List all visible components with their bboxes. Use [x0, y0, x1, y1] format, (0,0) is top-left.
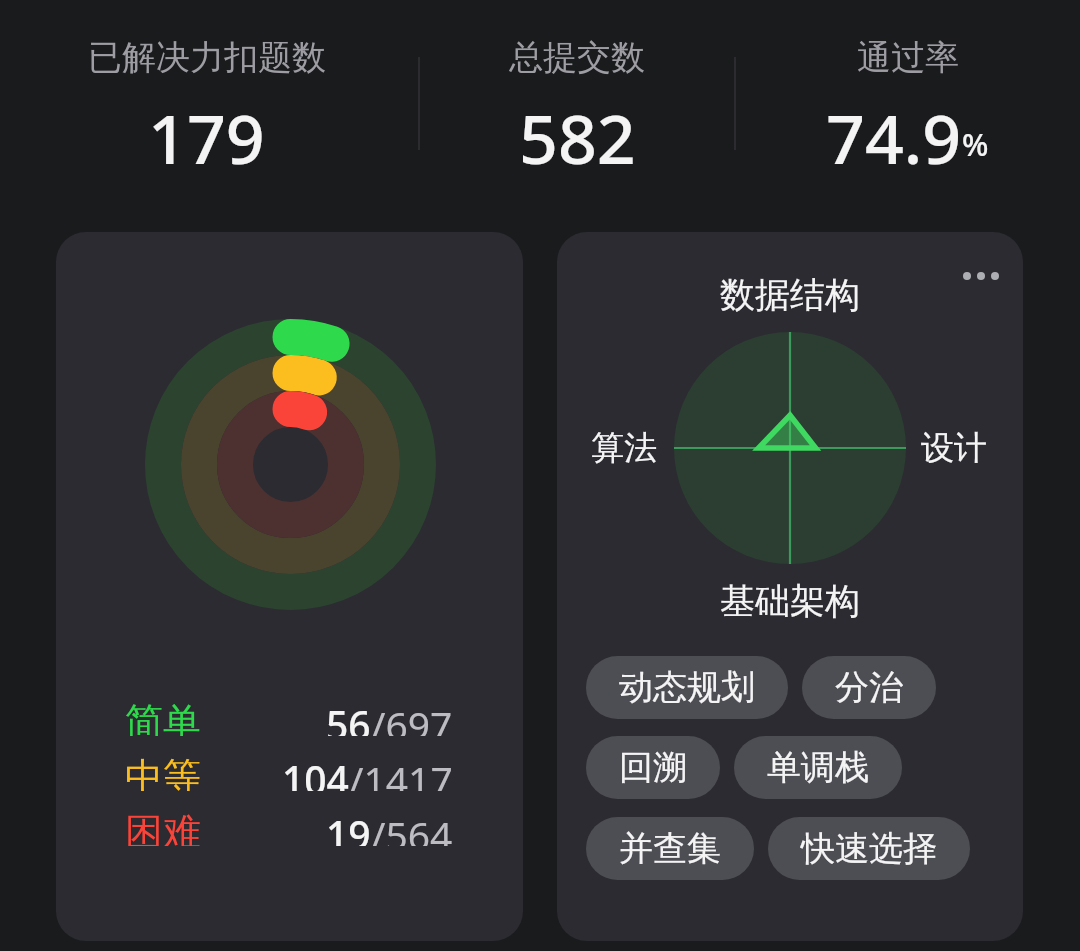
staticText: /564 [371, 808, 453, 846]
staticText: 中等 [125, 753, 201, 791]
button[interactable]: 简单 [56, 698, 523, 736]
staticText: 已解决力扣题数 [88, 36, 326, 79]
button[interactable]: 单调栈 [734, 736, 902, 799]
staticText: % [962, 123, 989, 165]
staticText: /1417 [349, 753, 453, 791]
button[interactable]: 已解决力扣题数 [0, 0, 413, 185]
staticText: 动态规划 [619, 666, 755, 709]
staticText: 179 [148, 91, 265, 184]
button[interactable]: 困难 [56, 808, 523, 846]
button[interactable]: 中等 [56, 753, 523, 791]
button[interactable]: 回溯 [586, 736, 720, 799]
staticText: /697 [371, 698, 453, 736]
button[interactable]: 通过率 [735, 0, 1080, 185]
staticText: 基础架构 [720, 579, 860, 623]
button[interactable]: More options [963, 272, 999, 280]
staticText: 并查集 [619, 827, 721, 870]
staticText: 582 [519, 91, 636, 184]
button[interactable]: 快速选择 [768, 817, 970, 880]
staticText: 74.9 [826, 91, 962, 184]
button[interactable]: 分治 [802, 656, 936, 719]
staticText: 19 [326, 808, 371, 846]
button[interactable]: 动态规划 [586, 656, 788, 719]
button[interactable]: 总提交数 [419, 0, 735, 185]
staticText: 简单 [125, 698, 201, 736]
staticText: 104 [282, 753, 349, 791]
staticText: 数据结构 [720, 273, 860, 317]
staticText: 单调栈 [767, 746, 869, 789]
staticText: 快速选择 [801, 827, 937, 870]
button[interactable]: 并查集 [586, 817, 754, 880]
staticText: 56 [326, 698, 371, 736]
staticText: 回溯 [619, 746, 687, 789]
staticText: 设计 [921, 427, 987, 469]
staticText: 困难 [125, 808, 201, 846]
staticText: 分治 [835, 666, 903, 709]
staticText: 总提交数 [509, 36, 645, 79]
staticText: 算法 [591, 427, 657, 469]
staticText: 通过率 [857, 36, 959, 79]
